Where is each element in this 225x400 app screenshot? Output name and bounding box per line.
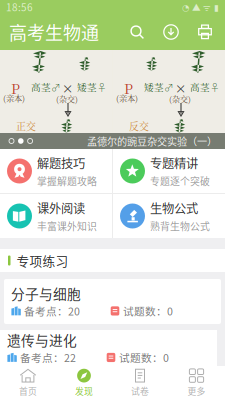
- staticText: ×: [62, 80, 73, 96]
- button[interactable]: 下载: [154, 15, 188, 49]
- staticText: P: [11, 78, 20, 98]
- staticText: 备考点：20: [24, 303, 80, 319]
- staticText: 试卷: [131, 385, 149, 397]
- button[interactable]: 解题技巧: [0, 149, 112, 193]
- staticText: ◔ ▲ ᯤ ▮: [182, 1, 219, 13]
- staticText: 掌握解题攻略: [37, 174, 97, 188]
- button[interactable]: 分子与细胞: [4, 279, 221, 324]
- staticText: 高茎♂: [31, 80, 61, 94]
- staticText: 生物公式: [150, 199, 198, 217]
- staticText: 矮茎♀: [77, 80, 107, 94]
- button[interactable]: 打印: [188, 15, 222, 49]
- staticText: 发现: [75, 385, 93, 397]
- staticText: 熟背生物公式: [150, 219, 210, 233]
- staticText: 遗传与进化: [7, 330, 77, 350]
- staticText: 备考点：22: [20, 350, 76, 365]
- staticText: (杂交): [56, 93, 78, 104]
- button[interactable]: 专题精讲: [113, 149, 225, 193]
- staticText: 18:56: [6, 0, 33, 14]
- button[interactable]: 遗传与进化: [0, 325, 217, 370]
- staticText: 专项练习: [16, 251, 68, 270]
- staticText: 更多: [187, 385, 205, 397]
- button[interactable]: 首页: [0, 366, 56, 400]
- staticText: (亲本): [3, 92, 25, 104]
- staticText: 课外阅读: [37, 199, 85, 217]
- staticText: 专题逐个突破: [150, 174, 210, 188]
- button[interactable]: 生物公式: [113, 194, 225, 238]
- staticText: (杂交): [169, 93, 191, 104]
- staticText: 解题技巧: [37, 154, 85, 172]
- staticText: 高茎♀: [190, 80, 220, 94]
- button[interactable]: 搜索: [120, 15, 154, 49]
- staticText: 分子与细胞: [11, 283, 81, 303]
- button[interactable]: 更多: [168, 366, 225, 400]
- staticText: ×: [175, 80, 186, 96]
- staticText: 首页: [19, 385, 37, 397]
- staticText: 矮茎♂: [144, 80, 174, 94]
- staticText: 正交: [16, 119, 36, 133]
- staticText: P: [124, 78, 133, 98]
- staticText: 反交: [129, 119, 149, 133]
- staticText: 孟德尔的豌豆杂交实验（一）: [87, 134, 217, 148]
- staticText: 试题数：0: [123, 303, 173, 319]
- button[interactable]: 试卷: [112, 366, 168, 400]
- staticText: 高考生物通: [9, 19, 99, 45]
- staticText: 试题数：0: [119, 350, 169, 365]
- staticText: (亲本): [116, 92, 138, 104]
- button[interactable]: 发现: [56, 366, 112, 400]
- button[interactable]: 课外阅读: [0, 194, 112, 238]
- staticText: 丰富课外知识: [37, 219, 97, 233]
- staticText: 专题精讲: [150, 154, 198, 172]
